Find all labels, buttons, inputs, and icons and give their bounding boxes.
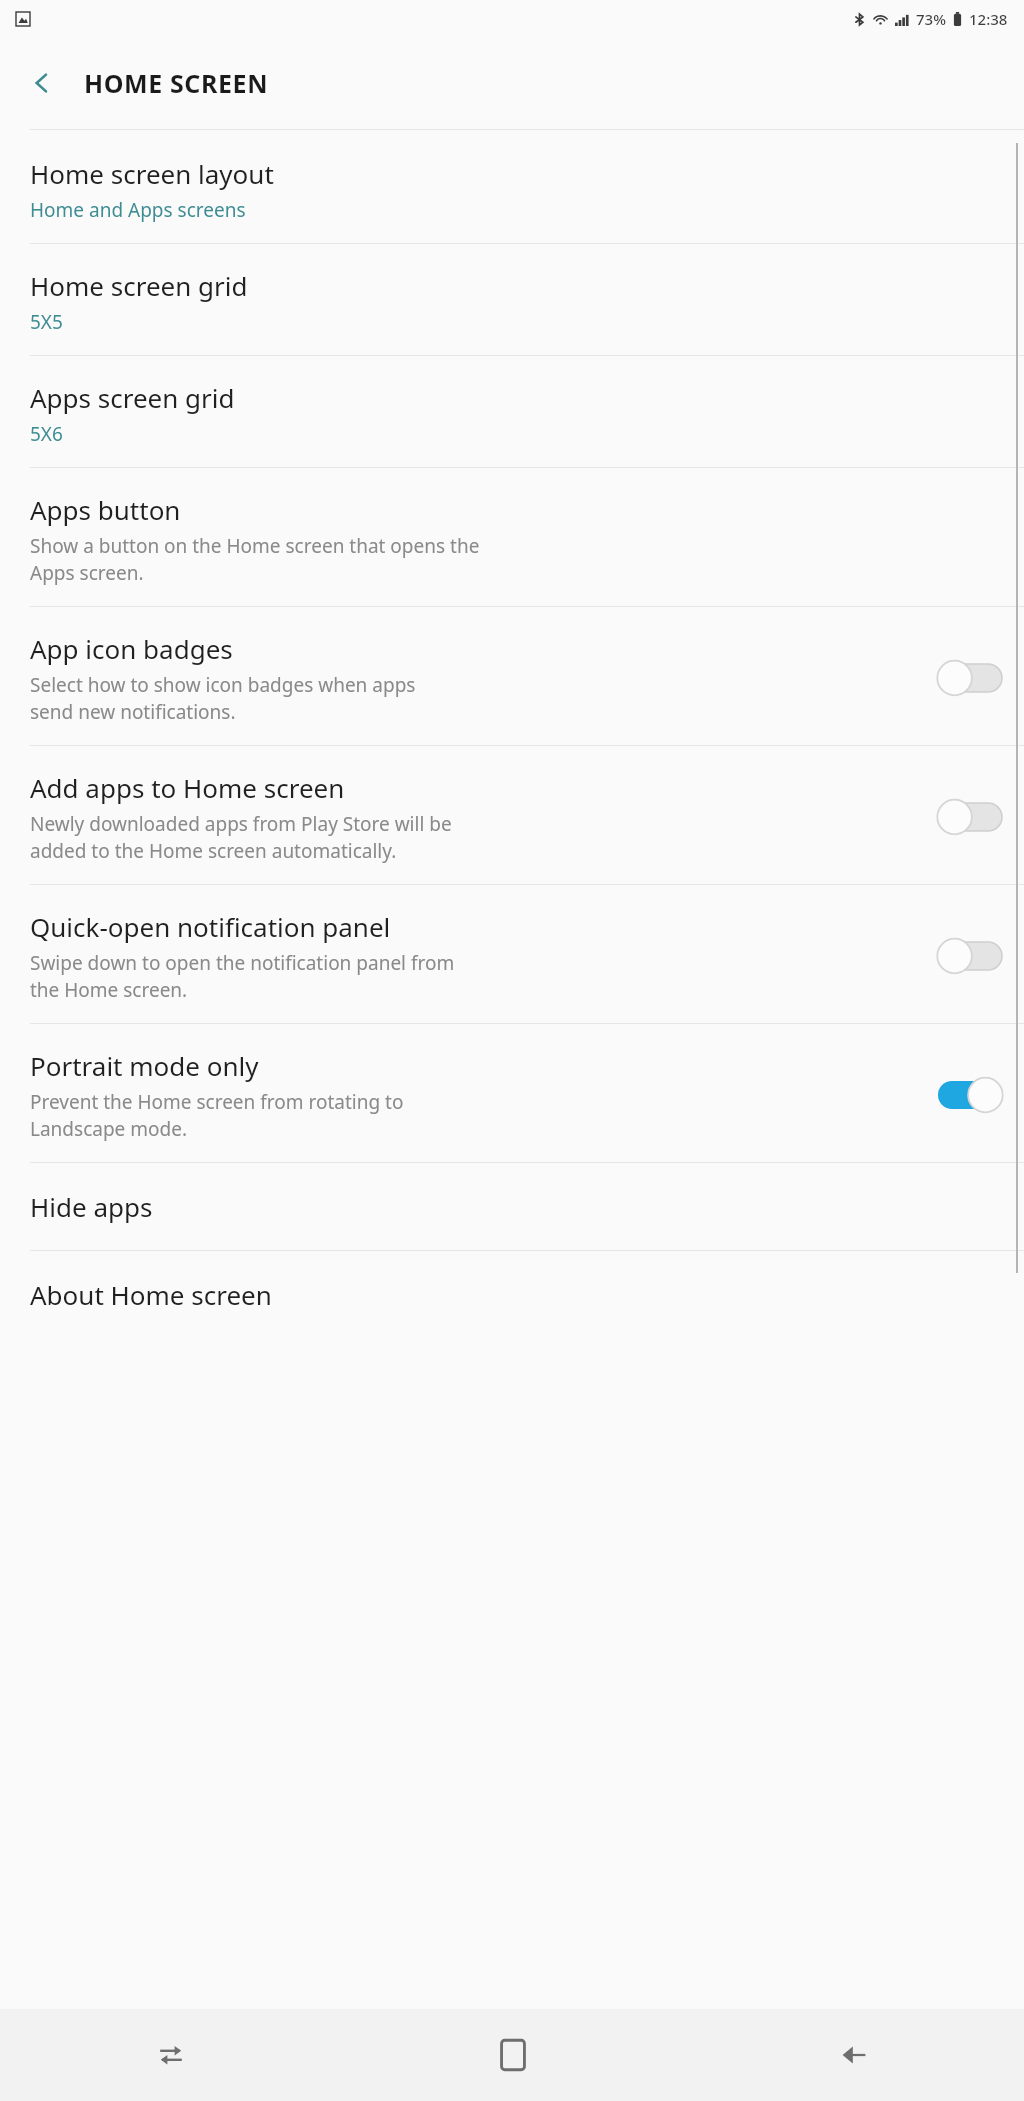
staticText: Hide apps <box>30 1189 153 1224</box>
button[interactable]: Home <box>342 2009 683 2101</box>
staticText: Newly downloaded apps from Play Store wi… <box>30 811 452 864</box>
staticText: Prevent the Home screen from rotating to… <box>30 1089 404 1142</box>
button[interactable]: About Home screen <box>0 1251 1024 1338</box>
button[interactable]: Home screen layout <box>0 130 1024 243</box>
button[interactable]: Apps button <box>0 468 1024 606</box>
button[interactable]: App icon badges <box>0 607 1024 745</box>
button[interactable]: Portrait mode only <box>0 1024 1024 1162</box>
button[interactable]: Toggle off <box>938 938 1002 974</box>
staticText: Home screen grid <box>30 268 248 303</box>
staticText: Portrait mode only <box>30 1048 259 1083</box>
staticText: Home screen layout <box>30 156 274 191</box>
button[interactable]: Quick-open notification panel <box>0 885 1024 1023</box>
staticText: About Home screen <box>30 1277 272 1312</box>
button[interactable]: Toggle on <box>938 1077 1002 1113</box>
button[interactable]: Toggle off <box>938 799 1002 835</box>
button[interactable]: Back <box>16 57 68 109</box>
button[interactable]: Toggle off <box>938 660 1002 696</box>
button[interactable]: Home screen grid <box>0 244 1024 355</box>
staticText: Swipe down to open the notification pane… <box>30 950 455 1003</box>
staticText: Show a button on the Home screen that op… <box>30 533 480 586</box>
staticText: App icon badges <box>30 631 233 666</box>
staticText: Apps button <box>30 492 181 527</box>
button[interactable]: Add apps to Home screen <box>0 746 1024 884</box>
staticText: Apps screen grid <box>30 380 235 415</box>
button[interactable]: Back <box>683 2009 1024 2101</box>
staticText: 73% <box>916 9 946 29</box>
staticText: Quick-open notification panel <box>30 909 391 944</box>
button[interactable]: Hide apps <box>0 1163 1024 1250</box>
staticText: 5X5 <box>30 309 63 335</box>
staticText: Select how to show icon badges when apps… <box>30 672 416 725</box>
staticText: HOME SCREEN <box>84 66 269 100</box>
staticText: 5X6 <box>30 421 63 447</box>
button[interactable]: Apps screen grid <box>0 356 1024 467</box>
button[interactable]: Recents <box>0 2009 342 2101</box>
staticText: Add apps to Home screen <box>30 770 345 805</box>
staticText: Home and Apps screens <box>30 197 246 223</box>
staticText: 12:38 <box>969 9 1008 29</box>
